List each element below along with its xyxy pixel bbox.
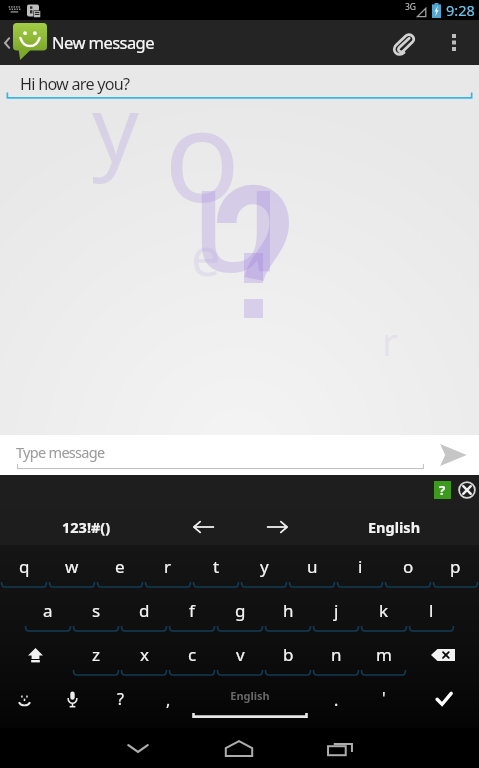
button[interactable]: Hide keyboard — [100, 728, 176, 768]
button[interactable]: i — [336, 545, 384, 589]
staticText: e — [115, 555, 125, 578]
staticText: ' — [382, 687, 386, 709]
button[interactable]: e — [96, 545, 144, 589]
staticText: n — [331, 643, 342, 666]
staticText: . — [334, 689, 339, 711]
staticText: v — [236, 643, 245, 666]
button[interactable]: h — [264, 589, 312, 633]
button[interactable]: Next — [247, 510, 307, 544]
button[interactable]: c — [168, 633, 216, 677]
staticText: English — [368, 517, 421, 537]
button[interactable]: Emoji — [0, 677, 48, 723]
staticText: f — [189, 599, 195, 622]
staticText: 3G — [405, 1, 417, 13]
button[interactable]: More options — [436, 20, 472, 65]
staticText: , — [166, 689, 171, 711]
button[interactable]: Navigate up — [0, 20, 50, 65]
staticText: i — [358, 555, 363, 578]
button[interactable]: k — [360, 589, 408, 633]
button[interactable]: y — [240, 545, 288, 589]
button[interactable]: f — [168, 589, 216, 633]
staticText: Hi how are you? — [20, 73, 130, 95]
button[interactable]: English — [344, 510, 444, 544]
staticText: 123!#() — [62, 517, 111, 537]
button[interactable]: Send — [427, 435, 479, 475]
staticText: q — [19, 555, 30, 578]
staticText: o — [164, 67, 241, 239]
staticText: r — [382, 315, 398, 367]
staticText: d — [139, 599, 150, 622]
button[interactable]: Close keyboard — [458, 481, 476, 499]
button[interactable]: q — [0, 545, 48, 589]
button[interactable]: w — [48, 545, 96, 589]
button[interactable]: Space — [191, 677, 309, 723]
staticText: t — [213, 555, 220, 578]
button[interactable]: Shift — [0, 633, 72, 677]
button[interactable]: b — [264, 633, 312, 677]
button[interactable]: d — [120, 589, 168, 633]
button[interactable]: p — [432, 545, 479, 589]
staticText: w — [65, 555, 79, 578]
button[interactable]: Help — [434, 481, 451, 499]
staticText: New message — [52, 31, 154, 53]
staticText: k — [379, 599, 389, 622]
staticText: u — [307, 555, 318, 578]
button[interactable]: Backspace — [407, 633, 479, 677]
staticText: ? — [439, 481, 446, 499]
button[interactable]: z — [72, 633, 120, 677]
button[interactable]: x — [120, 633, 168, 677]
button[interactable]: Home — [201, 728, 277, 768]
staticText: z — [92, 643, 100, 666]
staticText: u — [190, 112, 283, 316]
staticText: ? — [117, 688, 124, 710]
staticText: o — [403, 555, 414, 578]
button[interactable]: ? — [96, 677, 144, 723]
staticText: g — [235, 599, 246, 622]
button[interactable]: u — [288, 545, 336, 589]
button[interactable]: , — [144, 677, 192, 723]
staticText: p — [450, 555, 461, 578]
button[interactable]: o — [384, 545, 432, 589]
button[interactable]: Previous — [174, 510, 234, 544]
button[interactable]: j — [312, 589, 360, 633]
staticText: 9:28 — [446, 0, 475, 20]
button[interactable]: Voice input — [48, 677, 96, 723]
button[interactable]: v — [216, 633, 264, 677]
button[interactable]: a — [24, 589, 72, 633]
button[interactable]: Recent apps — [302, 728, 378, 768]
staticText: c — [188, 643, 197, 666]
staticText: l — [429, 599, 434, 622]
staticText: a — [43, 599, 53, 622]
button[interactable]: n — [312, 633, 360, 677]
button[interactable]: t — [192, 545, 240, 589]
staticText: English — [191, 688, 309, 703]
staticText: s — [92, 599, 101, 622]
staticText: y — [92, 64, 139, 189]
button[interactable]: Enter — [408, 677, 479, 723]
button[interactable]: g — [216, 589, 264, 633]
button[interactable]: r — [144, 545, 192, 589]
staticText: m — [376, 643, 392, 666]
button[interactable]: ' — [360, 677, 408, 723]
staticText: r — [164, 555, 172, 578]
button[interactable]: m — [360, 633, 407, 677]
button[interactable]: 123!#() — [40, 510, 132, 544]
button[interactable]: . — [312, 677, 360, 723]
staticText: b — [283, 643, 294, 666]
button[interactable]: Attach — [379, 20, 427, 65]
staticText: y — [260, 555, 269, 578]
staticText: e — [191, 220, 221, 291]
staticText: Type message — [16, 442, 105, 462]
staticText: j — [334, 599, 339, 622]
staticText: x — [140, 643, 149, 666]
button[interactable]: s — [72, 589, 120, 633]
button[interactable]: l — [408, 589, 455, 633]
staticText: h — [283, 599, 294, 622]
